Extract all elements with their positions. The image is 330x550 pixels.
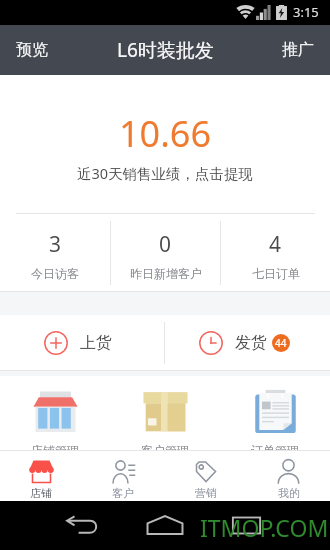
- button[interactable]: Recents: [224, 509, 268, 541]
- staticText: 10.66: [0, 109, 330, 158]
- staticText: 44: [275, 336, 287, 350]
- staticText: 今日访客: [31, 266, 79, 281]
- staticText: 店铺: [30, 486, 52, 500]
- staticText: 近30天销售业绩，点击提现: [0, 163, 330, 183]
- staticText: 昨日新增客户: [130, 266, 202, 281]
- button[interactable]: 我的: [247, 451, 330, 501]
- staticText: 推广: [282, 40, 314, 60]
- button[interactable]: 3: [0, 225, 110, 281]
- button[interactable]: 推广: [266, 30, 330, 70]
- button[interactable]: 客户管理: [110, 389, 220, 450]
- button[interactable]: Back: [60, 509, 104, 541]
- button[interactable]: 店铺管理: [0, 389, 110, 450]
- button[interactable]: 预览: [0, 30, 64, 70]
- staticText: 七日订单: [252, 266, 300, 281]
- button[interactable]: 0: [111, 225, 220, 281]
- staticText: 3: [49, 230, 62, 259]
- staticText: 店铺管理: [31, 443, 79, 450]
- button[interactable]: 发货: [165, 315, 330, 370]
- staticText: 营销: [195, 486, 217, 500]
- button[interactable]: 客户: [82, 451, 164, 501]
- button[interactable]: 订单管理: [220, 389, 330, 450]
- staticText: 3:15: [293, 3, 319, 21]
- button[interactable]: 上货: [0, 315, 164, 370]
- staticText: 客户管理: [141, 443, 189, 450]
- staticText: ITMOP.COM: [200, 512, 329, 543]
- button[interactable]: 店铺: [0, 451, 82, 501]
- staticText: 订单管理: [251, 443, 299, 450]
- staticText: L6时装批发: [117, 37, 214, 63]
- staticText: 发货: [235, 333, 267, 353]
- staticText: 我的: [278, 486, 300, 500]
- button[interactable]: Home: [141, 509, 189, 541]
- button[interactable]: 4: [221, 225, 330, 281]
- staticText: 上货: [80, 333, 112, 353]
- button[interactable]: 营销: [164, 451, 247, 501]
- staticText: 0: [159, 230, 172, 259]
- staticText: 预览: [16, 40, 48, 60]
- staticText: 4: [269, 230, 282, 259]
- staticText: 客户: [112, 486, 134, 500]
